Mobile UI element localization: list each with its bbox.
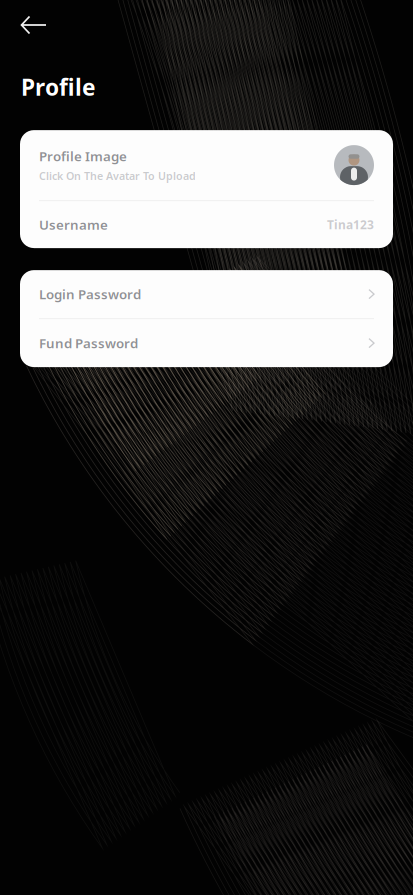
staticText: Username [39, 216, 108, 233]
staticText: Fund Password [39, 334, 138, 352]
staticText: Login Password [39, 285, 141, 303]
staticText: Tina123 [327, 217, 374, 232]
staticText: Click On The Avatar To Upload [39, 169, 196, 183]
staticText: Profile Image [39, 147, 127, 165]
button[interactable]: Fund Password [20, 319, 393, 367]
button[interactable]: Back [0, 0, 62, 48]
button[interactable]: Login Password [20, 270, 393, 318]
button[interactable]: Profile Image [20, 130, 393, 200]
staticText: Profile [21, 72, 96, 102]
